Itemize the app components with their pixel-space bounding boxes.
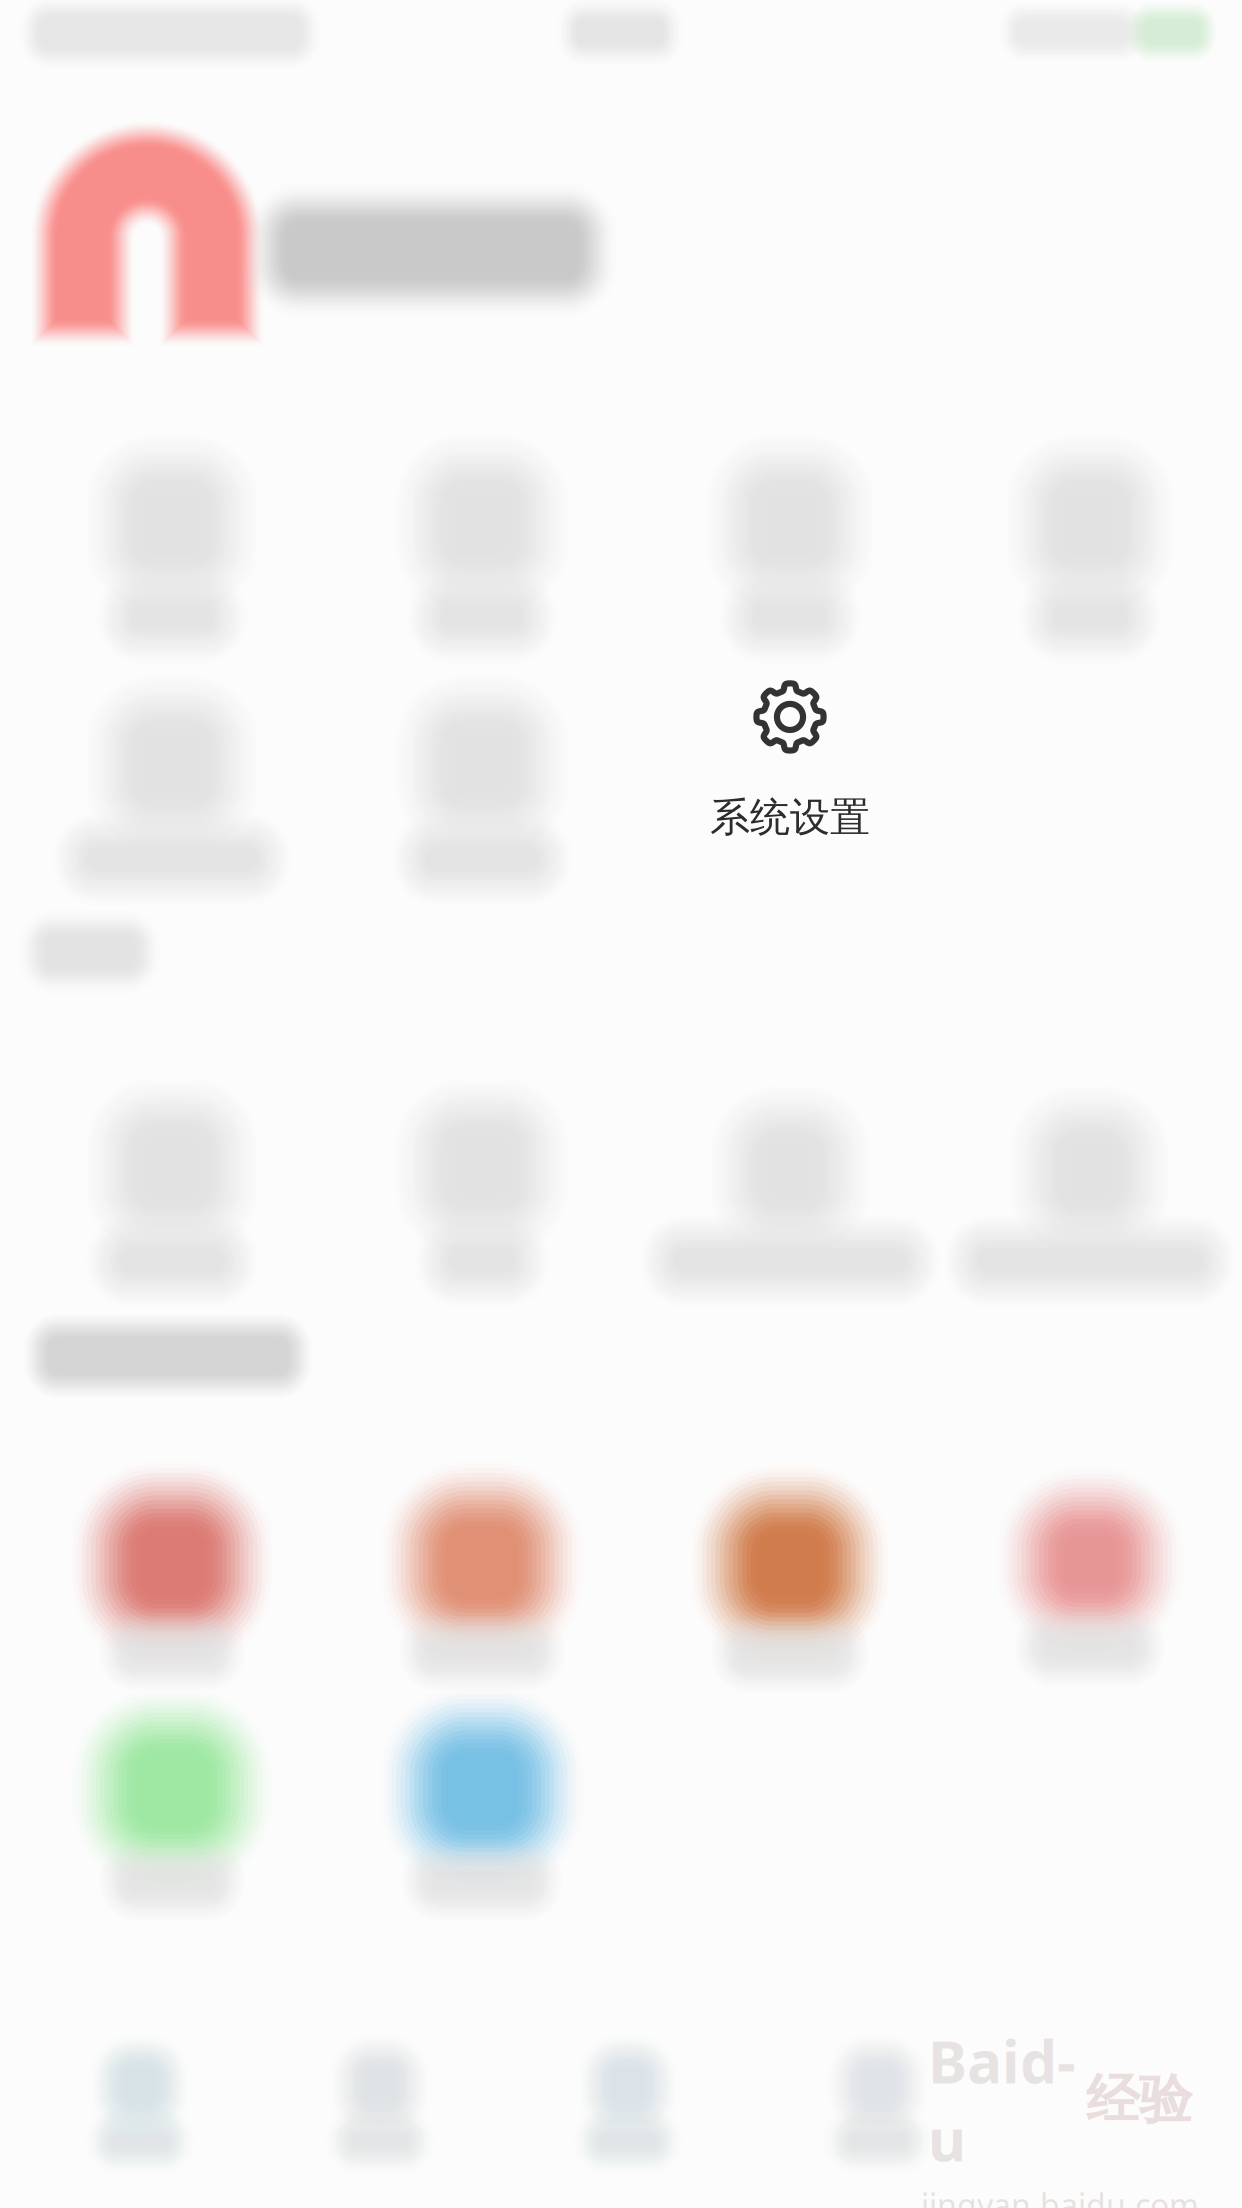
button[interactable]: 工具箱 [0, 2025, 280, 2195]
button[interactable]: Tool [342, 1062, 622, 1272]
button[interactable]: App [32, 1458, 312, 1668]
button[interactable]: Tool [32, 659, 312, 869]
button[interactable]: 我的 [738, 2025, 1018, 2195]
button[interactable]: App [342, 1684, 622, 1894]
button[interactable]: Tool [950, 418, 1230, 628]
button[interactable]: Tool [650, 418, 930, 628]
staticText: 系统设置 [710, 793, 870, 842]
button[interactable]: 系统设置 [650, 655, 930, 865]
button[interactable]: 清理 [240, 2025, 520, 2195]
button[interactable]: Tool [342, 418, 622, 628]
button[interactable]: Tool [32, 1062, 312, 1272]
button[interactable]: App [650, 1460, 930, 1670]
button[interactable]: Tool [32, 418, 312, 628]
button[interactable]: Tool [342, 659, 622, 869]
button[interactable]: 发现 [488, 2025, 768, 2195]
button[interactable]: App [32, 1684, 312, 1894]
staticText: Baidu [928, 2022, 1076, 2178]
button[interactable]: App [950, 1456, 1230, 1666]
staticText: 经验 [1086, 2067, 1192, 2132]
button[interactable]: Tool [950, 1066, 1230, 1276]
button[interactable]: Tool [650, 1066, 930, 1276]
button[interactable]: App [342, 1458, 622, 1668]
staticText: jingyan.baidu.com [921, 2184, 1199, 2208]
